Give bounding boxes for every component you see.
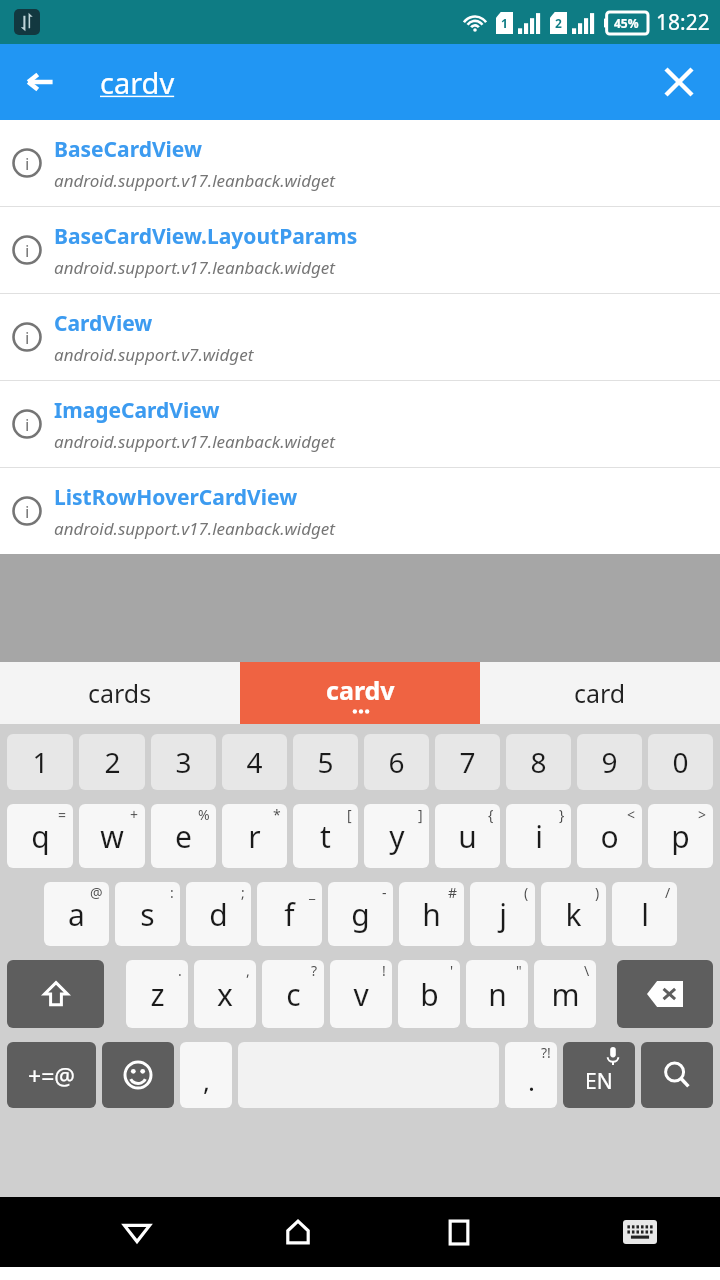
staticText: CardView (54, 309, 153, 338)
button[interactable]: = (7, 804, 73, 868)
staticText: { (488, 805, 494, 824)
button[interactable]: { (435, 804, 500, 868)
button[interactable]: Emoji (102, 1042, 174, 1108)
button[interactable]: Shift (7, 960, 104, 1028)
button[interactable]: 2 (79, 734, 145, 790)
staticText: +=@ (28, 1060, 75, 1091)
button[interactable]: - (328, 882, 393, 946)
button[interactable]: Clear (654, 57, 704, 107)
staticText: 18:22 (656, 8, 710, 37)
staticText: i (535, 816, 543, 857)
staticText: " (516, 961, 522, 980)
button[interactable]: Back (80, 1197, 193, 1267)
button[interactable]: 5 (293, 734, 358, 790)
button[interactable]: " (466, 960, 528, 1028)
button[interactable]: , (180, 1042, 232, 1108)
staticText: 2 (104, 743, 121, 781)
button[interactable]: Keyboard (587, 1197, 692, 1267)
staticText: j (499, 894, 507, 935)
button[interactable]: * (222, 804, 287, 868)
button[interactable]: i (0, 207, 720, 293)
button[interactable]: < (577, 804, 642, 868)
staticText: : (170, 883, 174, 902)
staticText: ? (311, 961, 318, 980)
button[interactable]: @ (44, 882, 109, 946)
staticText: 7 (459, 743, 476, 781)
button[interactable]: } (506, 804, 571, 868)
button[interactable]: cardv (100, 63, 175, 102)
button[interactable]: # (399, 882, 464, 946)
button[interactable]: Backspace (617, 960, 713, 1028)
button[interactable]: ; (186, 882, 251, 946)
staticText: . (528, 1063, 535, 1098)
button[interactable]: ] (364, 804, 429, 868)
button[interactable]: Search (641, 1042, 713, 1108)
button[interactable]: Back (14, 56, 66, 108)
button[interactable]: i (0, 468, 720, 554)
button[interactable]: 9 (577, 734, 642, 790)
button[interactable]: 4 (222, 734, 287, 790)
staticText: 4 (246, 743, 263, 781)
button[interactable]: [ (293, 804, 358, 868)
staticText: android.support.v17.leanback.widget (54, 169, 335, 192)
button[interactable]: : (115, 882, 180, 946)
button[interactable]: / (612, 882, 677, 946)
staticText: < (627, 805, 636, 824)
button[interactable]: ' (398, 960, 460, 1028)
staticText: cardv (100, 63, 175, 102)
button[interactable]: , (194, 960, 256, 1028)
staticText: ?! (541, 1043, 551, 1062)
button[interactable]: % (151, 804, 216, 868)
staticText: ( (524, 883, 529, 902)
button[interactable]: cardv (240, 662, 480, 724)
staticText: ' (450, 961, 454, 980)
staticText: y (389, 816, 405, 857)
button[interactable]: 7 (435, 734, 500, 790)
button[interactable]: > (648, 804, 713, 868)
button[interactable]: \ (534, 960, 596, 1028)
staticText: , (203, 1063, 210, 1098)
staticText: g (351, 894, 370, 935)
staticText: 5 (317, 743, 334, 781)
staticText: android.support.v17.leanback.widget (54, 256, 335, 279)
staticText: w (100, 816, 124, 857)
staticText: ImageCardView (54, 396, 220, 425)
button[interactable]: ( (470, 882, 535, 946)
button[interactable]: cards (0, 662, 240, 724)
staticText: x (217, 974, 233, 1015)
button[interactable]: 1 (7, 734, 73, 790)
button[interactable]: 3 (151, 734, 216, 790)
staticText: ! (382, 961, 386, 980)
staticText: q (31, 816, 50, 857)
staticText: e (175, 816, 192, 857)
button[interactable]: +=@ (7, 1042, 96, 1108)
button[interactable]: Home (241, 1197, 354, 1267)
staticText: android.support.v17.leanback.widget (54, 517, 335, 540)
button[interactable]: 6 (364, 734, 429, 790)
staticText: r (248, 816, 261, 857)
button[interactable]: Recents (402, 1197, 515, 1267)
button[interactable]: ) (541, 882, 606, 946)
button[interactable]: ? (262, 960, 324, 1028)
staticText: z (150, 974, 165, 1015)
staticText: 45% (614, 15, 639, 31)
button[interactable]: ?! (505, 1042, 557, 1108)
staticText: + (130, 805, 139, 824)
button[interactable]: _ (257, 882, 322, 946)
staticText: u (458, 816, 477, 857)
button[interactable]: EN (563, 1042, 635, 1108)
staticText: _ (309, 883, 316, 902)
staticText: h (422, 894, 441, 935)
button[interactable]: 8 (506, 734, 571, 790)
button[interactable]: 0 (648, 734, 713, 790)
button[interactable]: card (480, 662, 720, 724)
staticText: v (353, 974, 369, 1015)
button[interactable]: i (0, 120, 720, 206)
button[interactable]: ! (330, 960, 392, 1028)
button[interactable]: i (0, 381, 720, 467)
button[interactable]: . (126, 960, 188, 1028)
button[interactable]: i (0, 294, 720, 380)
button[interactable]: + (79, 804, 145, 868)
staticText: p (671, 816, 690, 857)
